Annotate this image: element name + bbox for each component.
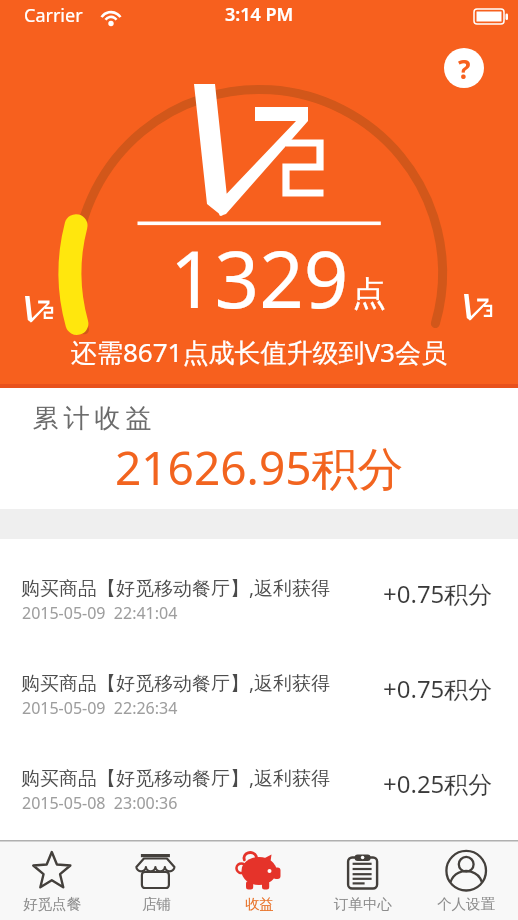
staticText: 2015-05-09 22:41:04 [22, 602, 178, 624]
button[interactable]: 好觅点餐 [0, 840, 104, 920]
staticText: +0.75积分 [383, 672, 493, 705]
staticText: 2015-05-08 23:00:36 [22, 792, 178, 814]
button[interactable]: 订单中心 [311, 840, 415, 920]
button[interactable] [0, 757, 518, 847]
staticText: 2015-05-09 22:26:34 [22, 697, 178, 719]
staticText: 收益 [245, 895, 274, 913]
staticText: 21626.95积分 [115, 436, 404, 499]
button[interactable]: 收益 [207, 840, 311, 920]
staticText: 购买商品【好觅移动餐厅】,返利获得 [21, 765, 331, 791]
staticText: ? [458, 51, 471, 86]
staticText: +0.25积分 [383, 767, 493, 800]
staticText: 个人设置 [437, 895, 495, 913]
button[interactable]: 个人设置 [414, 840, 518, 920]
staticText: 购买商品【好觅移动餐厅】,返利获得 [21, 575, 331, 601]
staticText: 3:14 PM [225, 2, 294, 27]
staticText: Carrier [24, 3, 83, 28]
staticText: 订单中心 [334, 895, 392, 913]
staticText: 店铺 [142, 895, 171, 913]
button[interactable]: ? [444, 48, 484, 88]
staticText: 还需8671点成长值升级到V3会员 [71, 334, 447, 370]
staticText: 购买商品【好觅移动餐厅】,返利获得 [21, 670, 331, 696]
button[interactable] [0, 567, 518, 657]
staticText: 累计收益 [30, 402, 154, 435]
button[interactable]: 店铺 [104, 840, 208, 920]
staticText: 点 [352, 272, 386, 315]
staticText: 1329 [170, 225, 349, 331]
staticText: +0.75积分 [383, 577, 493, 610]
button[interactable] [0, 662, 518, 752]
staticText: 好觅点餐 [23, 895, 81, 913]
